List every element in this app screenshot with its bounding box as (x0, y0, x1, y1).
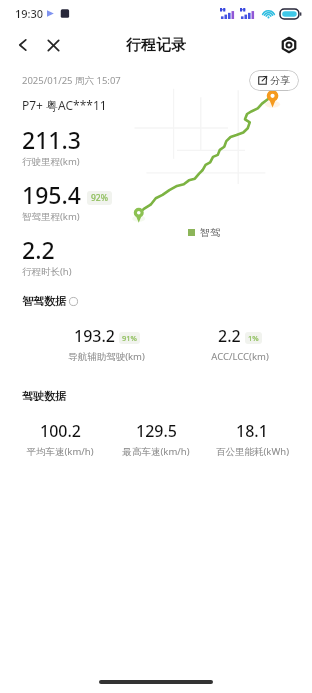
staticText: 100.2 (40, 420, 81, 442)
staticText: 最高车速(km/h) (122, 445, 190, 458)
staticText: 91% (122, 333, 137, 343)
staticText: 分享 (270, 74, 290, 87)
staticText: 行驶里程(km) (22, 155, 80, 168)
staticText: ACC/LCC(km) (211, 350, 269, 363)
staticText: 2.2 (22, 234, 55, 265)
staticText: 19:30 (15, 6, 44, 21)
staticText: 92% (91, 192, 108, 204)
staticText: 1% (248, 333, 259, 343)
staticText: 2025/01/25 周六 15:07 (22, 74, 121, 87)
staticText: 行程时长(h) (22, 265, 72, 278)
staticText: 211.3 (22, 124, 81, 155)
staticText: 智驾里程(km) (22, 210, 80, 223)
staticText: 平均车速(km/h) (26, 445, 94, 458)
button[interactable]: Back (8, 30, 38, 60)
button[interactable]: Close (38, 30, 68, 60)
staticText: P7+ 粤AC***11 (22, 97, 107, 113)
button[interactable]: 分享 (249, 70, 299, 91)
staticText: 行程记录 (126, 36, 186, 55)
staticText: 智驾数据 (22, 294, 66, 308)
staticText: 195.4 (22, 179, 81, 210)
staticText: 智驾 (200, 226, 220, 239)
staticText: 导航辅助驾驶(km) (68, 350, 145, 363)
staticText: 百公里能耗(kWh) (216, 445, 289, 458)
staticText: 驾驶数据 (22, 389, 66, 403)
staticText: 193.2 (74, 325, 115, 347)
staticText: 2.2 (218, 325, 241, 347)
button[interactable]: Settings (274, 30, 304, 60)
staticText: 18.1 (236, 420, 268, 442)
staticText: 129.5 (136, 420, 177, 442)
